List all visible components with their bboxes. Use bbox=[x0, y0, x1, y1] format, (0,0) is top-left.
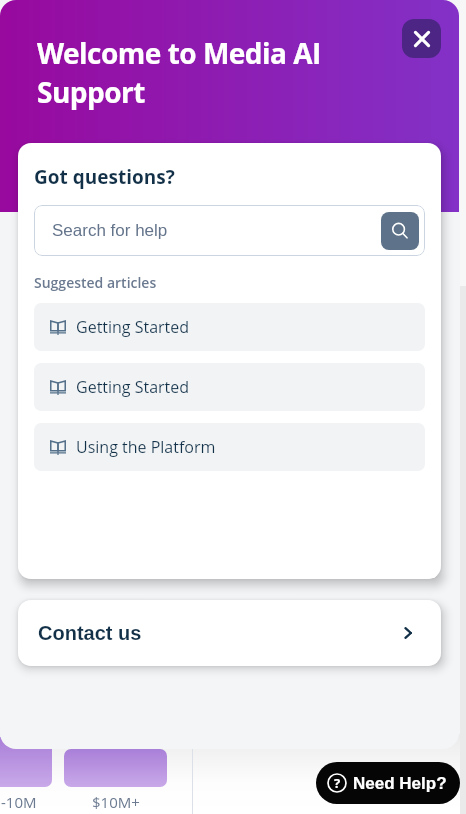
button[interactable]: Close bbox=[402, 19, 441, 58]
staticText: Need Help? bbox=[353, 774, 447, 793]
button[interactable]: Getting Started bbox=[34, 303, 425, 351]
button[interactable]: Getting Started bbox=[34, 363, 425, 411]
staticText: $10M+ bbox=[92, 792, 140, 812]
button[interactable]: Contact us bbox=[18, 600, 441, 666]
staticText: Getting Started bbox=[76, 376, 189, 398]
staticText: Search for help bbox=[52, 221, 168, 240]
button[interactable]: Search for help bbox=[34, 205, 425, 256]
staticText: Getting Started bbox=[76, 316, 189, 338]
staticText: Contact us bbox=[38, 622, 142, 644]
other: Open bbox=[404, 627, 412, 639]
button[interactable]: Search bbox=[381, 212, 419, 250]
staticText: Suggested articles bbox=[34, 273, 157, 292]
button[interactable]: Using the Platform bbox=[34, 423, 425, 471]
staticText: ? bbox=[334, 774, 341, 792]
staticText: Using the Platform bbox=[76, 436, 216, 458]
staticText: Got questions? bbox=[34, 164, 175, 190]
button[interactable]: ? bbox=[316, 762, 460, 804]
staticText: Welcome to Media AI Support bbox=[37, 34, 321, 111]
staticText: -10M bbox=[1, 792, 37, 812]
